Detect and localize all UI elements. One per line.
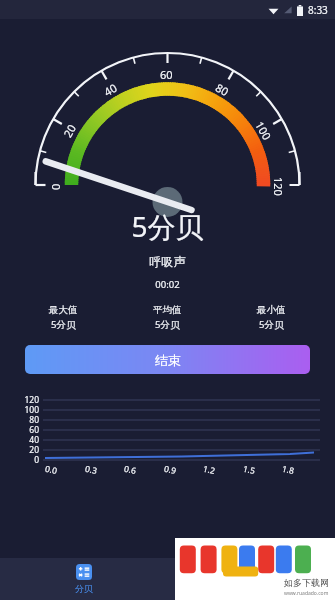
staticText: 5分贝 [51, 318, 76, 331]
staticText: 20 [60, 121, 79, 140]
button[interactable]: 历史 [167, 558, 335, 600]
staticText: 60 [0, 424, 39, 436]
staticText: 40 [101, 80, 120, 99]
staticText: 最小值 [257, 304, 286, 316]
staticText: 最大值 [49, 304, 78, 316]
staticText: 5分贝 [0, 207, 335, 245]
staticText: 5分贝 [259, 318, 284, 331]
staticText: 结束 [155, 352, 181, 368]
staticText: 20 [0, 444, 39, 456]
staticText: 0.0 [44, 463, 59, 477]
staticText: 0 [48, 183, 63, 190]
staticText: 分贝 [75, 583, 93, 594]
staticText: 1.8 [281, 463, 296, 477]
staticText: 80 [213, 80, 232, 99]
staticText: 120 [0, 394, 39, 406]
staticText: 80 [0, 414, 39, 426]
staticText: 40 [0, 434, 39, 446]
staticText: 100 [252, 118, 275, 142]
staticText: 60 [160, 67, 173, 82]
button[interactable]: 分贝 [0, 558, 167, 600]
staticText: 5分贝 [155, 318, 180, 331]
staticText: 100 [0, 404, 39, 416]
staticText: 8:33 [308, 3, 328, 17]
staticText: www.ruadado.com [284, 590, 329, 597]
staticText: 0.3 [84, 463, 99, 477]
staticText: 0.6 [123, 463, 138, 477]
staticText: 00:02 [0, 278, 335, 291]
staticText: 1.5 [242, 463, 257, 477]
staticText: 0.9 [163, 463, 178, 477]
button[interactable]: 结束 [25, 345, 310, 374]
staticText: 呼吸声 [0, 254, 335, 269]
staticText: 0 [0, 454, 39, 466]
staticText: 1.2 [202, 463, 217, 477]
staticText: 120 [271, 177, 286, 196]
staticText: 如多下载网 [284, 577, 329, 588]
staticText: 平均值 [153, 304, 182, 316]
